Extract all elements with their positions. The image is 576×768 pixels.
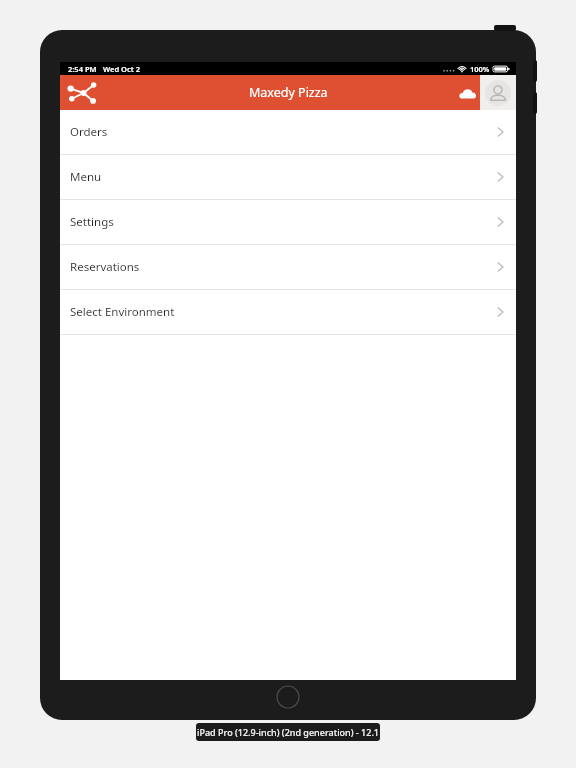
staticText: Maxedy Pizza — [249, 84, 328, 101]
staticText: Settings — [70, 214, 114, 230]
button[interactable]: Sync — [454, 80, 480, 106]
staticText: Menu — [70, 169, 102, 185]
staticText: 100% — [470, 64, 490, 74]
button[interactable]: Settings — [60, 200, 516, 244]
staticText: iPad Pro (12.9-inch) (2nd generation) - … — [197, 726, 379, 738]
button[interactable]: Orders — [60, 110, 516, 154]
staticText: Orders — [70, 124, 108, 140]
button[interactable]: Menu — [66, 78, 100, 108]
staticText: 2:54 PM — [68, 64, 97, 74]
staticText: Select Environment — [70, 304, 175, 320]
button[interactable]: Profile — [480, 75, 516, 110]
button[interactable]: Select Environment — [60, 290, 516, 334]
button[interactable]: Menu — [60, 155, 516, 199]
staticText: Wed Oct 2 — [103, 64, 140, 74]
staticText: Reservations — [70, 259, 140, 275]
button[interactable]: Reservations — [60, 245, 516, 289]
